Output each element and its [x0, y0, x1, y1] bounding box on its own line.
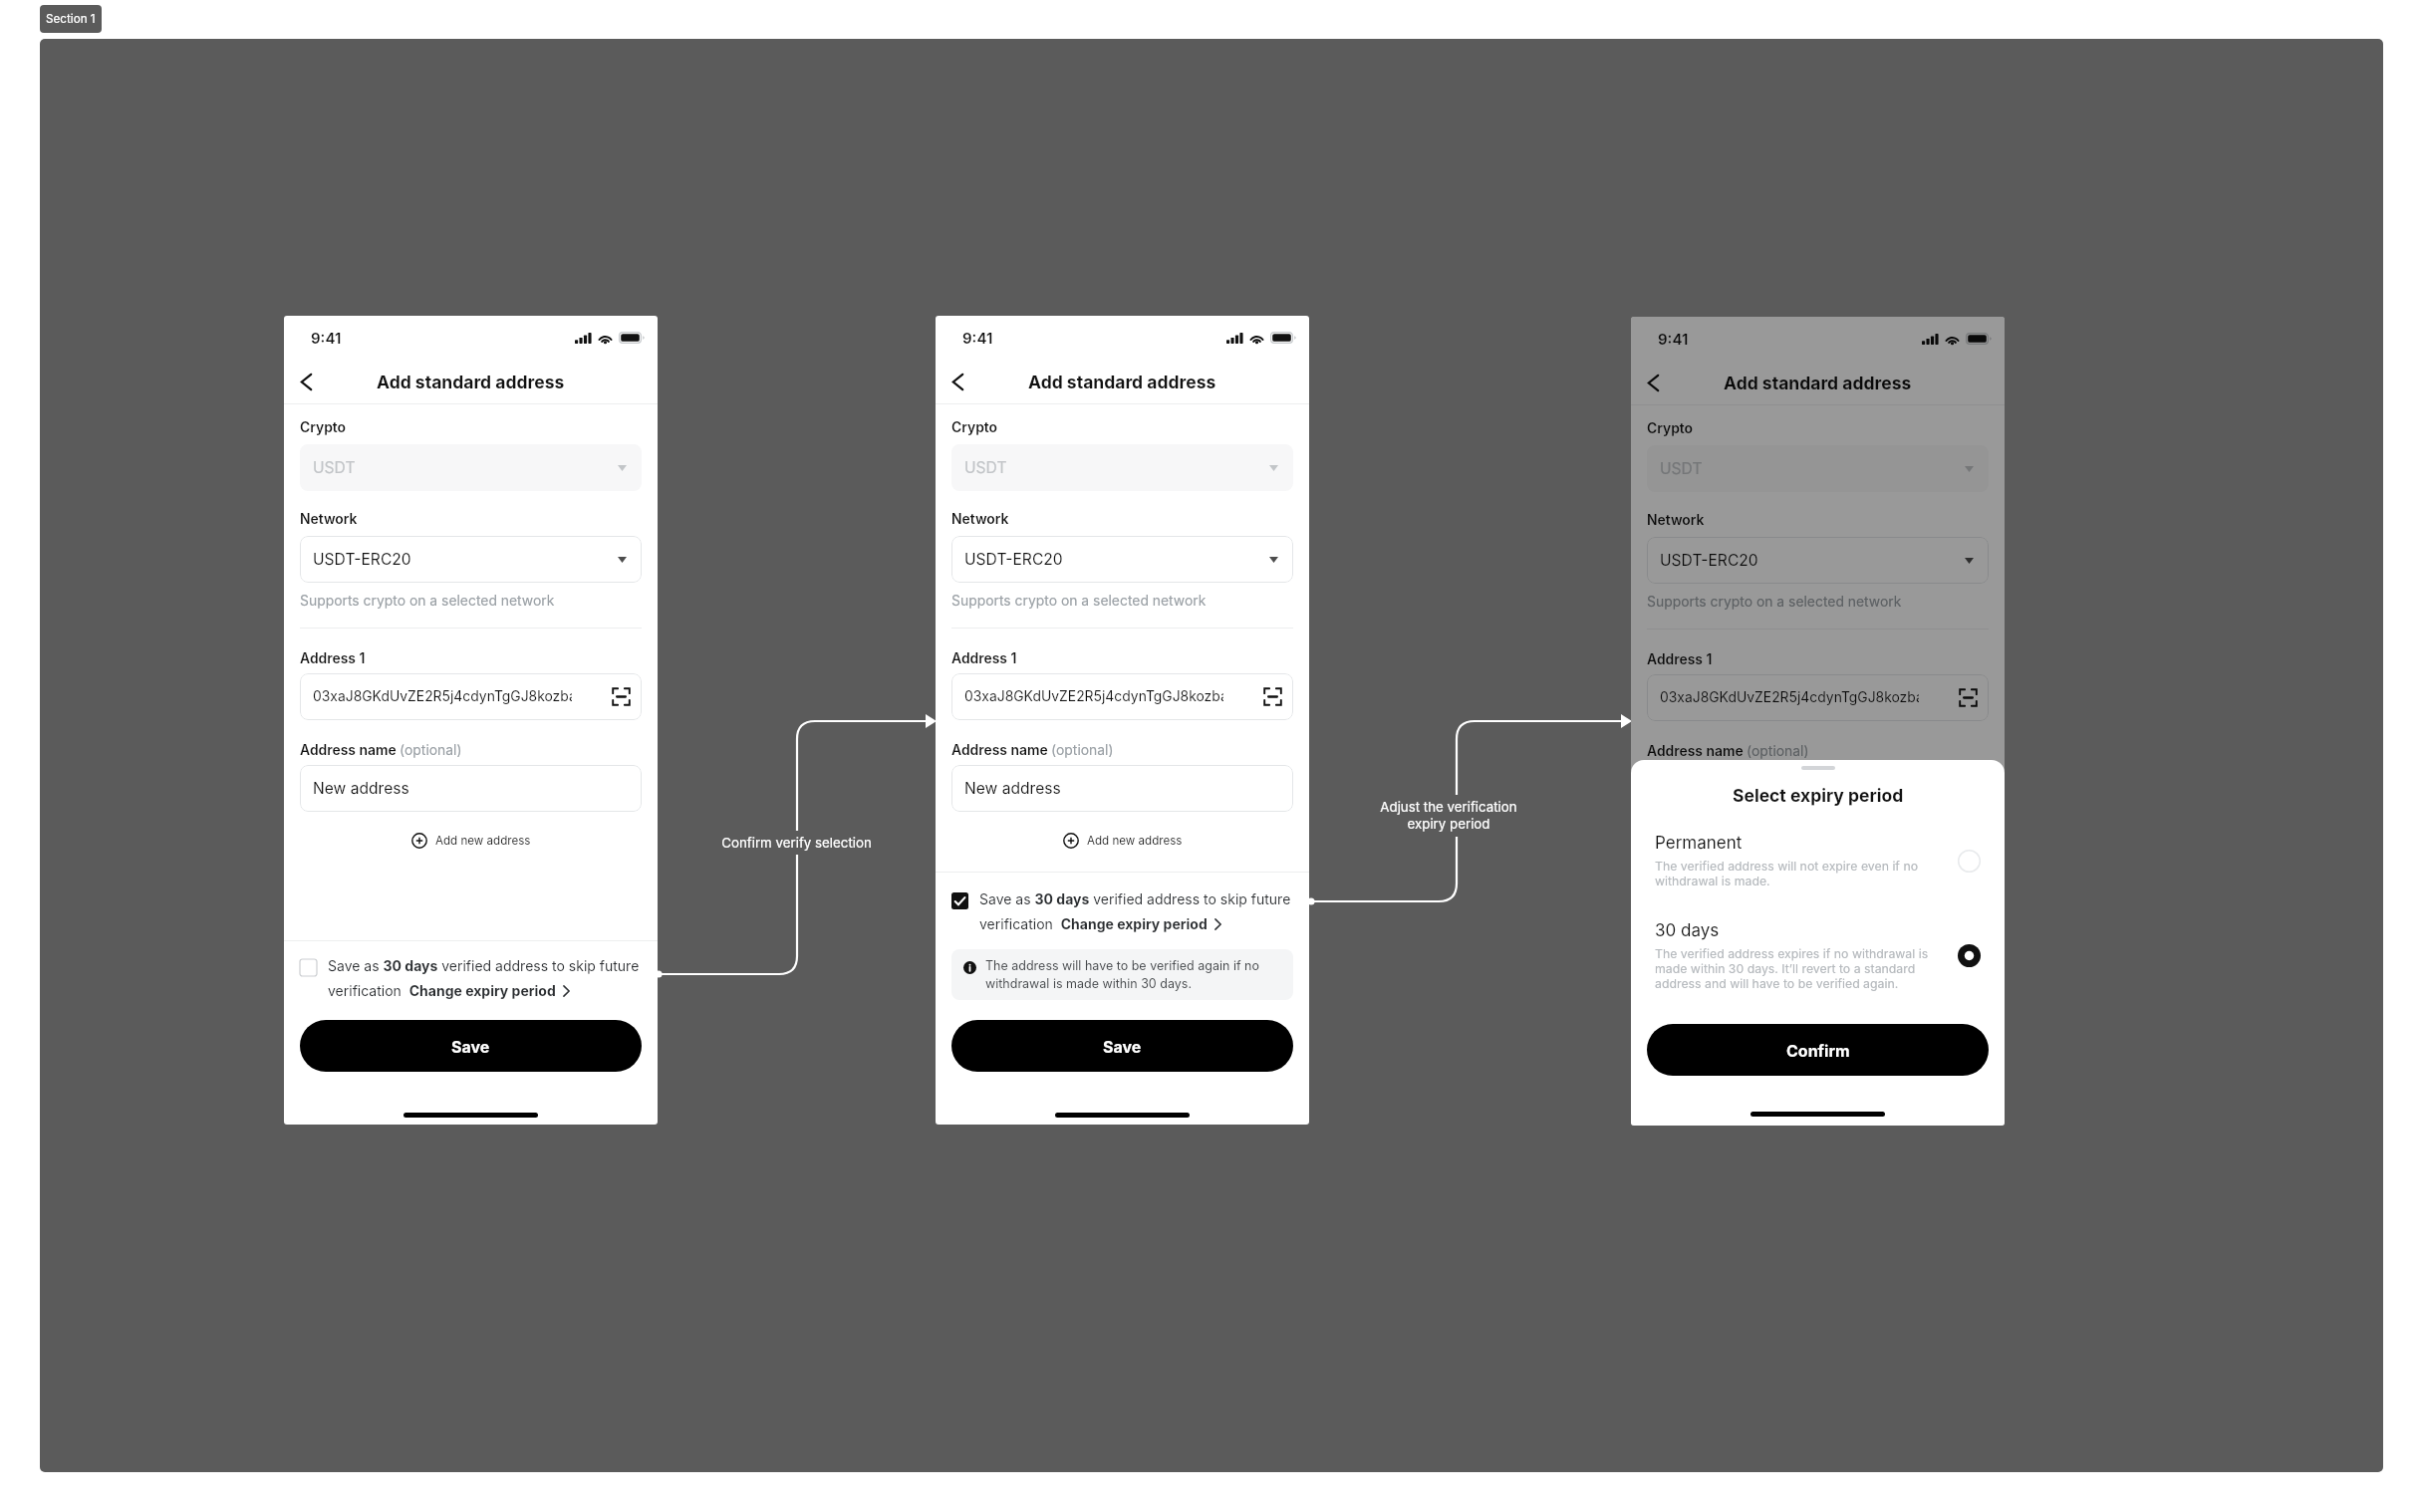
staticText: New address: [313, 779, 409, 798]
button[interactable]: Section 1: [40, 5, 102, 33]
button[interactable]: Back: [938, 362, 977, 401]
staticText: Address 1: [300, 650, 366, 667]
staticText: Select expiry period: [1733, 785, 1904, 806]
button[interactable]: USDT: [951, 444, 1293, 491]
staticText: Crypto: [300, 419, 347, 436]
button[interactable]: Save: [951, 1020, 1293, 1072]
button[interactable]: 03xaJ8GKdUvZE2R5j4cdynTgGJ8kozbax: [300, 673, 642, 720]
staticText: The verified address expires if no withd…: [1655, 946, 1932, 991]
staticText: Save: [1103, 1037, 1142, 1056]
staticText: USDT: [313, 458, 356, 477]
button[interactable]: New address: [1647, 766, 1989, 813]
staticText: Crypto: [951, 419, 998, 436]
staticText: 03xaJ8GKdUvZE2R5j4cdynTgGJ8kozbax: [1660, 689, 1919, 706]
button[interactable]: Save as 30 days verified address to skip…: [951, 890, 1293, 932]
staticText: Network: [1647, 512, 1705, 529]
staticText: Confirm verify selection: [721, 835, 872, 851]
staticText: USDT: [1660, 459, 1703, 478]
staticText: Add new address: [435, 834, 531, 848]
staticText: 03xaJ8GKdUvZE2R5j4cdynTgGJ8kozbax: [964, 688, 1223, 705]
staticText: Add standard address: [1028, 372, 1216, 392]
button[interactable]: Add new address: [936, 830, 1309, 852]
staticText: Crypto: [1647, 420, 1694, 437]
button[interactable]: Permanent: [1655, 833, 1981, 888]
staticText: Add standard address: [1724, 373, 1912, 393]
staticText: Section 1: [46, 12, 96, 26]
button[interactable]: New address: [951, 765, 1293, 812]
staticText: Address 1: [1647, 651, 1713, 668]
button[interactable]: USDT-ERC20: [1647, 537, 1989, 584]
staticText: Adjust the verification expiry period: [1380, 799, 1517, 833]
button[interactable]: USDT: [300, 444, 642, 491]
staticText: USDT-ERC20: [1660, 551, 1758, 570]
button[interactable]: New address: [300, 765, 642, 812]
button[interactable]: Add new address: [1631, 831, 2005, 853]
staticText: Add new address: [1087, 834, 1183, 848]
staticText: Save as 30 days verified address to skip…: [328, 957, 640, 974]
button[interactable]: 03xaJ8GKdUvZE2R5j4cdynTgGJ8kozbax: [1647, 674, 1989, 721]
staticText: USDT-ERC20: [964, 550, 1063, 569]
button[interactable]: 30 days: [1655, 920, 1981, 991]
staticText: Save as 30 days verified address to skip…: [979, 890, 1291, 907]
button[interactable]: Add new address: [284, 830, 658, 852]
button[interactable]: Confirm: [1647, 1024, 1989, 1076]
staticText: New address: [1660, 780, 1756, 799]
staticText: 03xaJ8GKdUvZE2R5j4cdynTgGJ8kozbax: [313, 688, 572, 705]
button[interactable]: USDT: [1647, 445, 1989, 492]
staticText: verification Change expiry period: [979, 915, 1208, 932]
button[interactable]: USDT-ERC20: [951, 536, 1293, 583]
staticText: Permanent: [1655, 833, 1743, 854]
staticText: USDT-ERC20: [313, 550, 411, 569]
staticText: Confirm: [1786, 1041, 1850, 1060]
staticText: 9:41: [962, 329, 993, 347]
staticText: Address 1: [951, 650, 1017, 667]
staticText: Address name (optional): [1647, 743, 1809, 760]
staticText: Supports crypto on a selected network: [951, 593, 1207, 610]
staticText: 30 days: [1655, 920, 1720, 941]
staticText: 9:41: [311, 329, 342, 347]
staticText: The verified address will not expire eve…: [1655, 859, 1932, 888]
staticText: Address name (optional): [951, 742, 1114, 759]
staticText: Add standard address: [377, 372, 565, 392]
staticText: 9:41: [1658, 330, 1689, 348]
staticText: Save: [451, 1037, 490, 1056]
button[interactable]: USDT-ERC20: [300, 536, 642, 583]
staticText: USDT: [964, 458, 1007, 477]
staticText: New address: [964, 779, 1061, 798]
staticText: Network: [300, 511, 358, 528]
staticText: Supports crypto on a selected network: [1647, 594, 1902, 611]
staticText: The address will have to be verified aga…: [985, 958, 1281, 991]
button[interactable]: Save as 30 days verified address to skip…: [300, 957, 642, 999]
button[interactable]: Save: [300, 1020, 642, 1072]
button[interactable]: Back: [286, 362, 326, 401]
button[interactable]: Back: [1633, 363, 1673, 402]
staticText: Supports crypto on a selected network: [300, 593, 555, 610]
staticText: Network: [951, 511, 1009, 528]
staticText: verification Change expiry period: [328, 982, 556, 999]
button[interactable]: 03xaJ8GKdUvZE2R5j4cdynTgGJ8kozbax: [951, 673, 1293, 720]
staticText: Address name (optional): [300, 742, 462, 759]
